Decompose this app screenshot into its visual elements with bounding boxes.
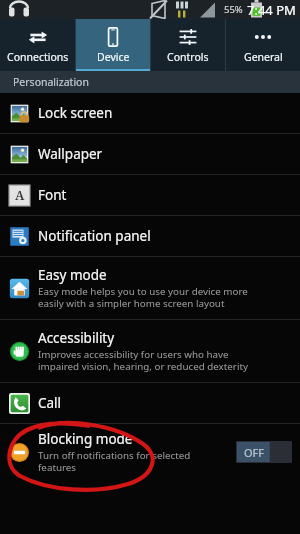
button[interactable]: Device <box>76 19 150 71</box>
staticText: Blocking mode <box>38 430 133 448</box>
staticText: Font <box>38 186 67 204</box>
staticText: OFF <box>244 445 265 460</box>
staticText: Easy mode <box>38 266 107 284</box>
staticText: Device <box>97 50 130 64</box>
button[interactable]: Controls <box>151 19 225 71</box>
button[interactable]: Accessibility <box>0 320 300 382</box>
staticText: Lock screen <box>38 104 113 122</box>
staticText: General <box>244 50 283 64</box>
staticText: Wallpaper <box>38 145 103 163</box>
button[interactable]: Wallpaper <box>0 134 300 174</box>
button[interactable]: Notification panel <box>0 216 300 256</box>
button[interactable]: Lock screen <box>0 93 300 133</box>
staticText: Personalization <box>13 75 89 89</box>
staticText: Accessibility <box>38 329 115 347</box>
staticText: Improves accessibility for users who hav… <box>38 348 248 373</box>
staticText: 7:44 PM <box>247 1 296 19</box>
staticText: Call <box>38 394 62 412</box>
staticText: Turn off notifications for selected feat… <box>38 449 191 474</box>
button[interactable]: Blocking mode toggle, off <box>236 441 292 463</box>
button[interactable]: General <box>226 19 300 71</box>
button[interactable]: Blocking mode <box>0 424 300 480</box>
staticText: Notification panel <box>38 227 151 245</box>
button[interactable]: Call <box>0 383 300 423</box>
button[interactable]: A <box>0 175 300 215</box>
button[interactable]: Connections <box>0 19 75 71</box>
staticText: Easy mode helps you to use your device m… <box>38 285 248 310</box>
staticText: A <box>15 187 25 204</box>
button[interactable]: Easy mode <box>0 257 300 319</box>
staticText: Controls <box>167 50 209 64</box>
staticText: 55% <box>224 3 243 16</box>
staticText: Connections <box>7 50 69 64</box>
